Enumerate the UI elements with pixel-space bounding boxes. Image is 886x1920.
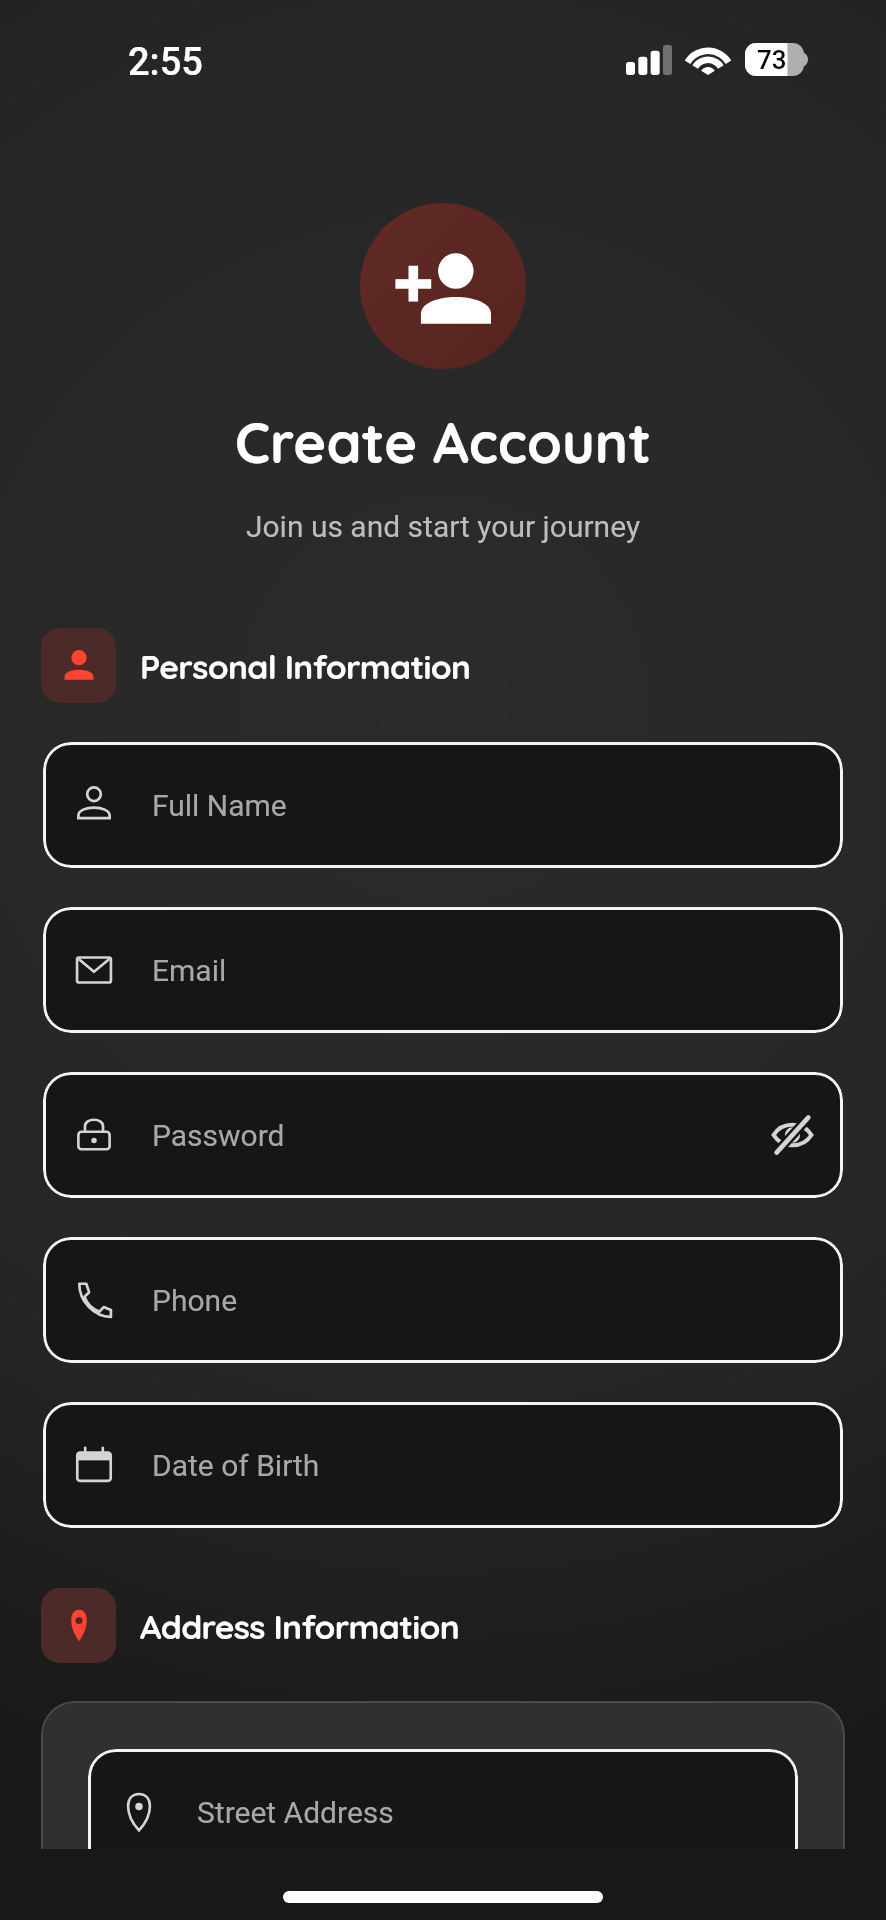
staticText: Personal Information bbox=[140, 645, 471, 687]
staticText: Phone bbox=[152, 1283, 238, 1318]
staticText: Email bbox=[152, 953, 227, 988]
staticText: Street Address bbox=[197, 1795, 394, 1830]
staticText: 73 bbox=[757, 45, 787, 75]
button[interactable]: Phone bbox=[43, 1237, 843, 1363]
button[interactable]: Password bbox=[43, 1072, 843, 1198]
staticText: Create Account bbox=[0, 407, 886, 477]
button[interactable]: Full Name bbox=[43, 742, 843, 868]
button[interactable]: Date of Birth bbox=[43, 1402, 843, 1528]
staticText: Full Name bbox=[152, 788, 287, 823]
staticText: 2:55 bbox=[128, 40, 203, 85]
button[interactable]: Show password bbox=[770, 1107, 814, 1163]
staticText: Date of Birth bbox=[152, 1448, 320, 1483]
button[interactable]: Email bbox=[43, 907, 843, 1033]
staticText: Address Information bbox=[140, 1605, 460, 1647]
staticText: Password bbox=[152, 1118, 285, 1153]
staticText: Join us and start your journey bbox=[0, 509, 886, 544]
button[interactable]: Street Address bbox=[88, 1749, 798, 1849]
